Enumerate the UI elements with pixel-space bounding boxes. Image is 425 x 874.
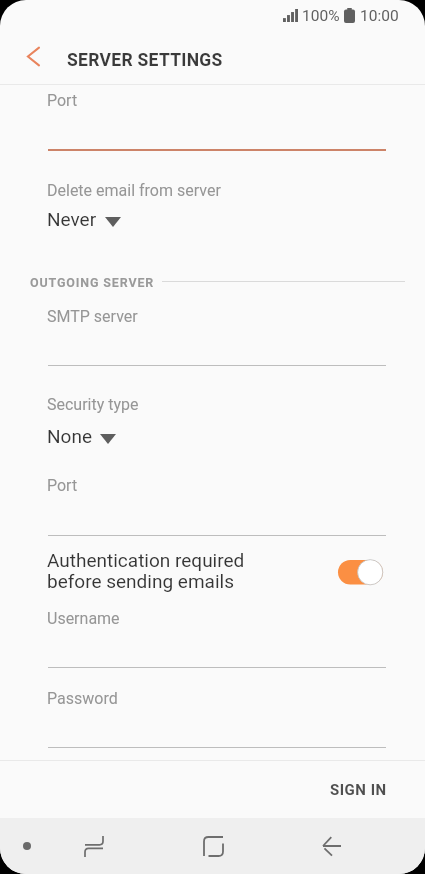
button[interactable]: SIGN IN [316,770,400,810]
button[interactable]: Home [190,818,236,874]
button[interactable]: Back [309,818,355,874]
staticText: Port [47,91,78,110]
staticText: 10:00 [360,7,399,25]
staticText: SMTP server [47,307,138,326]
staticText: Username [47,609,120,628]
staticText: None [47,425,92,447]
staticText: 100% [302,7,340,25]
button[interactable]: Menu [0,818,53,874]
staticText: SERVER SETTINGS [67,50,223,71]
staticText: Password [47,689,118,708]
staticText: OUTGOING SERVER [30,275,155,290]
button[interactable]: Authentication required toggle [337,559,384,586]
staticText: SIGN IN [330,781,387,799]
staticText: Delete email from server [47,181,221,200]
staticText: Authentication required before sending e… [47,549,245,593]
staticText: Security type [47,395,139,414]
button[interactable]: None [47,423,116,449]
staticText: Never [47,208,97,230]
button[interactable]: Recent apps [71,818,117,874]
button[interactable]: Never [47,206,121,232]
staticText: Port [47,476,78,495]
button[interactable]: Navigate up [10,34,55,79]
